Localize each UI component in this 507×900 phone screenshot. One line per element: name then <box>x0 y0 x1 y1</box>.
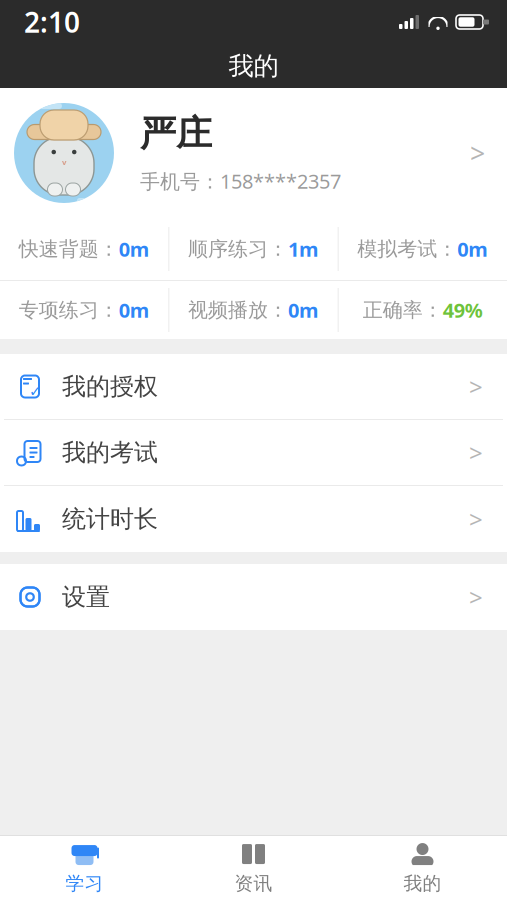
staticText: 我的授权 <box>62 372 158 401</box>
staticText: > <box>469 503 483 535</box>
staticText: 我的 <box>403 872 441 895</box>
button[interactable]: 资讯 <box>169 836 338 900</box>
staticText: 我的 <box>228 50 278 81</box>
button[interactable]: ᵛ <box>0 88 507 218</box>
staticText: 学习 <box>65 872 103 895</box>
staticText: 0m <box>119 236 150 262</box>
staticText: 0m <box>288 297 319 323</box>
staticText: 正确率： <box>363 298 443 322</box>
staticText: 1m <box>288 236 319 262</box>
staticText: 资讯 <box>234 872 272 895</box>
button[interactable]: 学习 <box>0 836 169 900</box>
button[interactable]: 我的考试 <box>0 420 507 486</box>
staticText: 49% <box>443 297 483 323</box>
staticText: 视频播放： <box>188 298 288 322</box>
staticText: 手机号：158****2357 <box>140 168 341 194</box>
staticText: 快速背题： <box>19 237 119 261</box>
staticText: 顺序练习： <box>188 237 288 261</box>
staticText: 设置 <box>62 582 110 612</box>
staticText: > <box>469 371 483 402</box>
staticText: 模拟考试： <box>357 237 457 261</box>
staticText: > <box>469 581 483 613</box>
staticText: 严庄 <box>140 112 212 156</box>
staticText: 统计时长 <box>62 504 158 534</box>
staticText: ✓ <box>29 383 41 399</box>
staticText: > <box>470 135 485 171</box>
staticText: 专项练习： <box>19 298 119 322</box>
button[interactable]: 设置 <box>0 564 507 630</box>
staticText: 0m <box>119 297 150 323</box>
button[interactable]: 统计时长 <box>0 486 507 552</box>
staticText: > <box>469 437 483 468</box>
button[interactable]: ✓ <box>0 354 507 420</box>
button[interactable]: 我的 <box>338 836 507 900</box>
staticText: 2:10 <box>24 3 80 41</box>
staticText: 我的考试 <box>62 438 158 467</box>
staticText: 0m <box>457 236 488 262</box>
staticText: ᵛ <box>62 156 66 172</box>
